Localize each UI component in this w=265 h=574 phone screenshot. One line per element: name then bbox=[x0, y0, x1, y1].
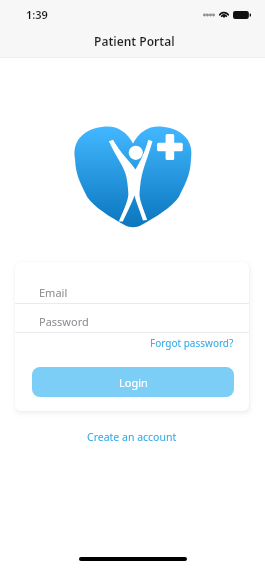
staticText: 1:39 bbox=[26, 7, 48, 22]
staticText: Password bbox=[39, 314, 89, 329]
button[interactable]: Login bbox=[32, 367, 234, 397]
staticText: Create an account bbox=[87, 430, 177, 444]
button[interactable]: Forgot password? bbox=[141, 334, 234, 352]
staticText: Forgot password? bbox=[150, 336, 234, 350]
staticText: Login bbox=[119, 375, 148, 390]
button[interactable]: Create an account bbox=[84, 427, 179, 446]
staticText: Patient Portal bbox=[94, 33, 175, 49]
staticText: Email bbox=[39, 285, 68, 300]
